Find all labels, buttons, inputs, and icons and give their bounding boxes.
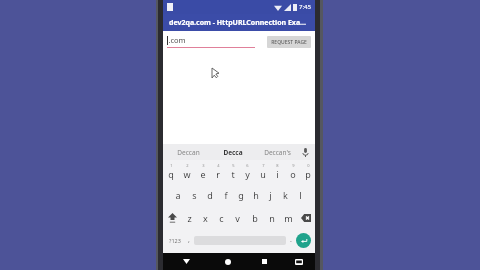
staticText: j: [269, 189, 272, 201]
staticText: o: [290, 168, 296, 180]
staticText: c: [219, 212, 224, 224]
button[interactable]: 7: [255, 160, 270, 183]
staticText: 9: [292, 163, 295, 168]
button[interactable]: n: [263, 206, 280, 229]
staticText: s: [192, 189, 197, 201]
button[interactable]: Backspace: [297, 206, 315, 229]
button[interactable]: c: [213, 206, 229, 229]
staticText: Decca: [223, 148, 243, 157]
button[interactable]: b: [246, 206, 263, 229]
button[interactable]: Home: [210, 253, 246, 270]
button[interactable]: g: [233, 183, 248, 206]
button[interactable]: 9: [285, 160, 300, 183]
staticText: w: [183, 168, 191, 180]
button[interactable]: 0: [300, 160, 315, 183]
button[interactable]: 4: [210, 160, 225, 183]
staticText: a: [175, 189, 181, 201]
staticText: d: [207, 189, 213, 201]
button[interactable]: v: [229, 206, 246, 229]
staticText: ?123: [169, 237, 181, 244]
button[interactable]: x: [197, 206, 213, 229]
button[interactable]: Switch keyboard: [282, 253, 315, 270]
staticText: Deccan's: [264, 148, 291, 157]
staticText: 1: [170, 163, 173, 168]
staticText: 2: [186, 163, 189, 168]
button[interactable]: Shift: [163, 206, 181, 229]
staticText: .com: [168, 35, 186, 45]
button[interactable]: d: [202, 183, 218, 206]
button[interactable]: f: [218, 183, 233, 206]
button[interactable]: 1: [163, 160, 179, 183]
staticText: ,: [188, 235, 190, 245]
staticText: v: [235, 212, 240, 224]
button[interactable]: m: [280, 206, 297, 229]
staticText: l: [299, 189, 302, 201]
button[interactable]: s: [186, 183, 202, 206]
button[interactable]: j: [263, 183, 278, 206]
staticText: i: [276, 168, 279, 180]
staticText: m: [284, 212, 293, 224]
staticText: 6: [246, 163, 249, 168]
staticText: dev2qa.com - HttpURLConnection Exa...: [169, 18, 306, 28]
button[interactable]: ?123: [166, 229, 184, 251]
button[interactable]: Voice input: [299, 144, 312, 160]
button[interactable]: a: [170, 183, 186, 206]
button[interactable]: REQUEST PAGE: [267, 36, 311, 48]
staticText: z: [187, 212, 192, 224]
staticText: u: [260, 168, 266, 180]
staticText: r: [216, 168, 220, 180]
staticText: p: [305, 168, 311, 180]
staticText: 0: [307, 163, 310, 168]
button[interactable]: z: [181, 206, 197, 229]
staticText: x: [203, 212, 208, 224]
button[interactable]: k: [278, 183, 293, 206]
staticText: 4: [217, 163, 220, 168]
button[interactable]: Hide keyboard: [163, 253, 210, 270]
button[interactable]: l: [293, 183, 308, 206]
button[interactable]: .: [286, 229, 296, 251]
button[interactable]: h: [248, 183, 263, 206]
button[interactable]: 8: [270, 160, 285, 183]
staticText: y: [245, 168, 250, 180]
staticText: 5: [232, 163, 235, 168]
staticText: b: [252, 212, 258, 224]
staticText: k: [283, 189, 288, 201]
button[interactable]: 3: [195, 160, 210, 183]
button[interactable]: 6: [240, 160, 255, 183]
staticText: g: [238, 189, 244, 201]
button[interactable]: Enter: [296, 233, 311, 248]
button[interactable]: Recents: [246, 253, 282, 270]
staticText: q: [168, 168, 174, 180]
button[interactable]: 5: [225, 160, 240, 183]
staticText: n: [269, 212, 275, 224]
button[interactable]: 2: [179, 160, 195, 183]
staticText: 8: [276, 163, 279, 168]
button[interactable]: Deccan: [166, 148, 211, 157]
staticText: REQUEST PAGE: [271, 39, 307, 46]
staticText: t: [231, 168, 235, 180]
staticText: .: [290, 235, 292, 245]
staticText: Deccan: [177, 148, 200, 157]
staticText: f: [224, 189, 228, 201]
button[interactable]: Deccan's: [255, 148, 299, 157]
button[interactable]: ,: [184, 229, 194, 251]
button[interactable]: Decca: [211, 148, 255, 157]
staticText: 3: [202, 163, 205, 168]
staticText: 7:45: [299, 3, 311, 11]
staticText: e: [200, 168, 206, 180]
staticText: 7: [262, 163, 265, 168]
staticText: h: [253, 189, 259, 201]
button[interactable]: .com: [167, 35, 263, 48]
